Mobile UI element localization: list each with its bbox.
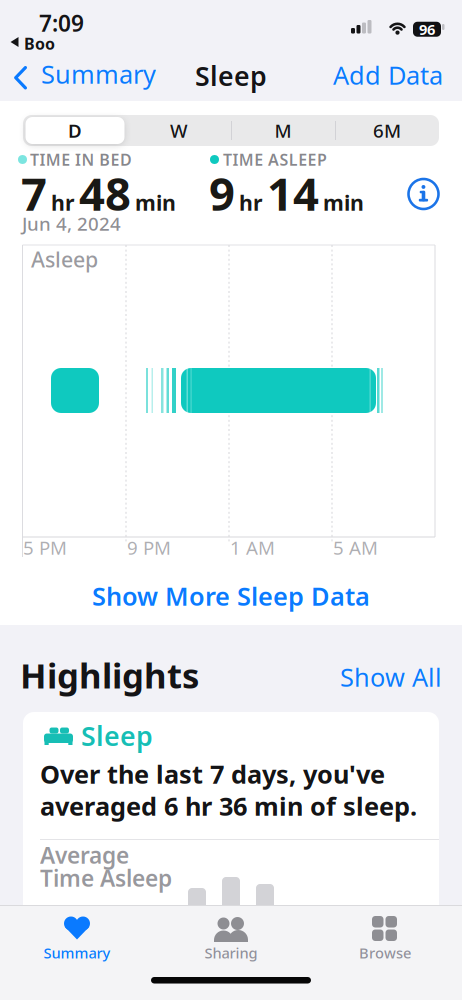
staticText: 96 [419,19,435,39]
staticText: 9 hr 14 min [209,163,364,223]
button[interactable]: Sleep [23,712,439,952]
button[interactable]: W [127,115,231,146]
button[interactable]: Add Data [313,58,443,92]
button[interactable]: Sharing [181,906,281,962]
staticText: 7:09 [39,8,84,38]
staticText: Highlights [20,652,199,698]
staticText: D [68,118,82,143]
staticText: Asleep [31,245,98,273]
button[interactable]: Summary [27,906,127,962]
staticText: Summary [43,943,110,962]
button[interactable] [408,179,438,209]
staticText: M [274,118,291,143]
staticText: Time Asleep [40,863,172,893]
staticText: TIME ASLEEP [223,149,327,170]
staticText: 7 hr 48 min [21,163,176,223]
staticText: Sharing [204,943,257,962]
button[interactable]: Show All [322,660,442,694]
staticText: 9 PM [127,535,171,560]
staticText: 5 AM [333,535,378,560]
button[interactable]: Browse [335,906,435,962]
staticText: Summary [41,57,156,91]
staticText: TIME IN BED [30,149,132,170]
staticText: 1 AM [230,535,275,560]
staticText: Average [40,840,129,870]
staticText: W [170,118,188,143]
staticText: Sleep [81,718,153,753]
staticText: Browse [359,943,411,962]
staticText: Boo [24,33,55,54]
staticText: averaged 6 hr 36 min of sleep. [40,789,417,823]
staticText: Over the last 7 days, you've [40,757,385,791]
staticText: Add Data [333,58,443,92]
button[interactable]: M [231,115,335,146]
staticText: Show All [340,660,442,694]
staticText: Jun 4, 2024 [22,211,121,236]
staticText: 6M [373,118,401,143]
button[interactable]: Show More Sleep Data [0,579,462,613]
staticText: Sleep [195,58,267,93]
button[interactable]: 6M [335,115,439,146]
staticText: Show More Sleep Data [92,579,370,613]
staticText: 5 PM [23,535,67,560]
button[interactable]: Summary [14,57,154,93]
button[interactable]: D [25,117,124,144]
